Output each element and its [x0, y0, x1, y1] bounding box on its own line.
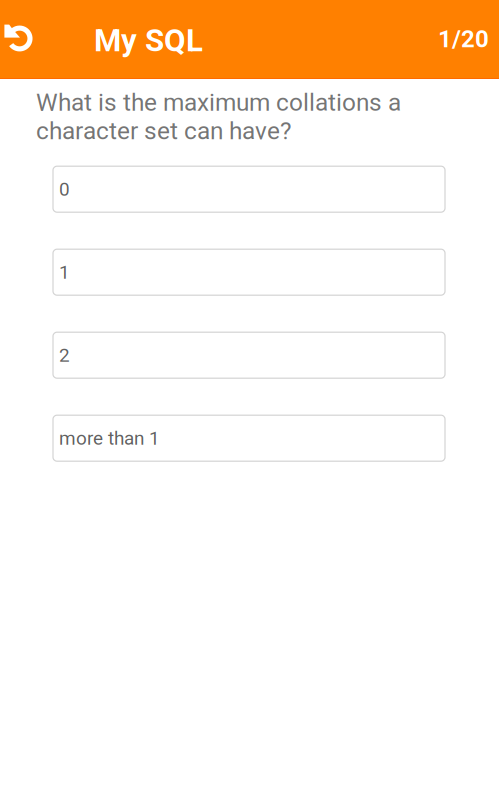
button[interactable]: more than 1 [53, 415, 445, 461]
staticText: 0 [59, 178, 70, 200]
button[interactable]: Restart quiz [0, 0, 42, 78]
button[interactable]: 0 [53, 166, 445, 212]
staticText: 1 [59, 261, 70, 283]
staticText: more than 1 [59, 427, 160, 449]
staticText: My SQL [94, 22, 203, 59]
staticText: What is the maximum collations a charact… [36, 88, 401, 145]
staticText: 2 [59, 344, 70, 366]
button[interactable]: 1 [53, 249, 445, 295]
button[interactable]: 2 [53, 332, 445, 378]
staticText: 1/20 [438, 25, 489, 53]
